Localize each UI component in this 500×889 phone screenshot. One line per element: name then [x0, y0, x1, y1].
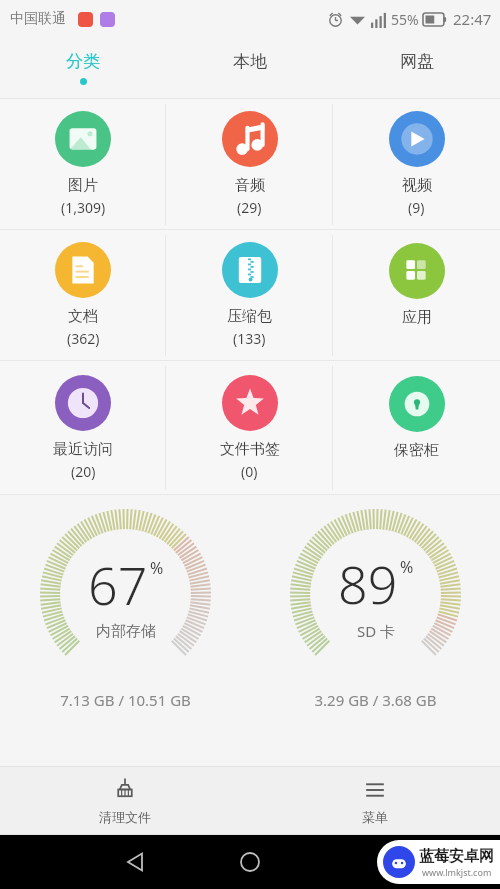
staticText: 最近访问: [53, 440, 113, 459]
staticText: 网盘: [400, 51, 434, 72]
button[interactable]: 文件书签: [166, 361, 333, 494]
staticText: www.lmkjst.com: [422, 866, 492, 878]
staticText: 文件书签: [220, 440, 280, 459]
staticText: (29): [237, 198, 262, 217]
staticText: 音频: [235, 176, 265, 195]
button[interactable]: 压缩包: [166, 230, 333, 360]
staticText: %: [400, 556, 414, 578]
button[interactable]: 菜单: [250, 767, 500, 834]
button[interactable]: 文档: [0, 230, 166, 360]
staticText: 55%: [391, 10, 419, 29]
staticText: 文档: [68, 307, 98, 326]
staticText: SD 卡: [357, 621, 396, 641]
staticText: 清理文件: [99, 809, 151, 825]
button[interactable]: 网盘: [333, 38, 500, 98]
staticText: 89: [338, 548, 398, 619]
staticText: (1,309): [61, 198, 106, 217]
staticText: 保密柜: [394, 441, 439, 460]
button[interactable]: 本地: [166, 38, 333, 98]
staticText: 蓝莓安卓网: [419, 847, 494, 866]
staticText: 视频: [402, 176, 432, 195]
button[interactable]: Home: [235, 847, 265, 877]
button[interactable]: 音频: [166, 99, 333, 229]
button[interactable]: 最近访问: [0, 361, 166, 494]
staticText: 内部存储: [96, 622, 156, 641]
button[interactable]: 分类: [0, 38, 166, 98]
staticText: 7.13 GB / 10.51 GB: [60, 690, 191, 710]
staticText: 中国联通: [10, 10, 66, 28]
button[interactable]: 图片: [0, 99, 166, 229]
staticText: (362): [67, 329, 100, 348]
button[interactable]: Back: [120, 847, 150, 877]
staticText: 菜单: [362, 809, 388, 825]
staticText: (133): [233, 329, 266, 348]
button[interactable]: 保密柜: [333, 361, 500, 494]
staticText: 3.29 GB / 3.68 GB: [314, 690, 437, 710]
staticText: 22:47: [453, 9, 492, 29]
staticText: (20): [71, 462, 96, 481]
staticText: 本地: [233, 51, 267, 72]
staticText: 67: [88, 549, 148, 620]
staticText: 分类: [66, 51, 100, 72]
button[interactable]: 清理文件: [0, 767, 250, 834]
staticText: %: [150, 557, 164, 579]
staticText: 压缩包: [227, 307, 272, 326]
staticText: 图片: [68, 176, 98, 195]
staticText: 应用: [402, 308, 432, 327]
button[interactable]: 应用: [333, 230, 500, 360]
staticText: (9): [408, 198, 425, 217]
button[interactable]: 视频: [333, 99, 500, 229]
staticText: (0): [241, 462, 258, 481]
